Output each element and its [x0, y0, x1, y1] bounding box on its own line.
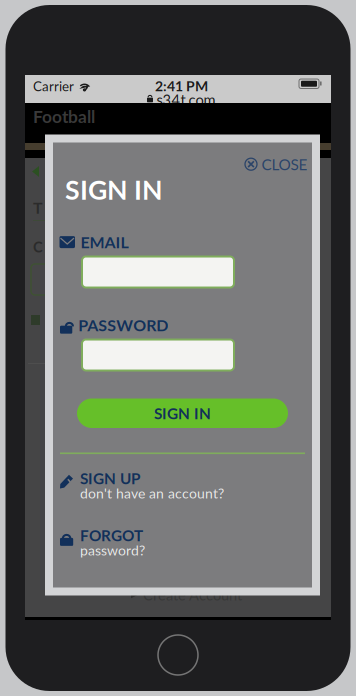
staticText: s34t.com — [156, 91, 215, 109]
staticText: SIGN UP — [80, 469, 140, 487]
staticText: FORGOT — [80, 526, 143, 544]
staticText: 2:41 PM — [155, 77, 208, 94]
staticText: C — [33, 238, 43, 256]
staticText: PASSWORD — [78, 315, 168, 335]
staticText: T — [33, 198, 43, 217]
staticText: SIGN IN — [154, 404, 211, 422]
staticText: CLOSE — [261, 155, 307, 173]
staticText: Carrier — [33, 78, 74, 94]
button[interactable]: CLOSE — [242, 151, 310, 177]
button[interactable]: SIGN UP — [60, 473, 260, 503]
staticText: SIGN IN — [65, 173, 163, 205]
staticText: Create Account — [143, 586, 242, 604]
button[interactable]: SIGN IN — [77, 398, 288, 428]
staticText: Football — [33, 106, 95, 127]
staticText: EMAIL — [80, 232, 128, 252]
button[interactable]: FORGOT — [60, 530, 260, 560]
staticText: password? — [80, 542, 145, 558]
staticText: don't have an account? — [80, 485, 224, 501]
